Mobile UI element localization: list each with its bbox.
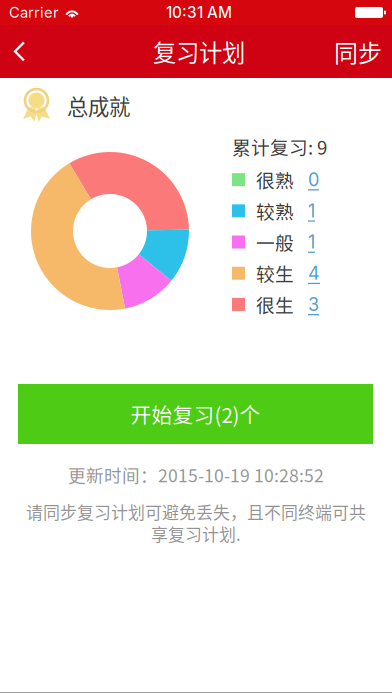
staticText: 享复习计划. <box>151 521 241 546</box>
staticText: 4 <box>308 262 320 284</box>
button[interactable]: 同步 <box>324 25 392 78</box>
staticText: 较熟 <box>256 197 294 224</box>
button[interactable]: Back <box>0 25 39 78</box>
staticText: 很熟 <box>256 166 294 193</box>
staticText: 请同步复习计划可避免丢失，且不同终端可共 <box>26 499 366 524</box>
staticText: 10:31 AM <box>166 3 232 22</box>
staticText: 一般 <box>256 228 294 255</box>
staticText: 开始复习(2)个 <box>130 399 260 429</box>
button[interactable]: 开始复习(2)个 <box>18 384 373 444</box>
staticText: 3 <box>308 293 319 315</box>
staticText: 较生 <box>256 260 294 287</box>
staticText: 同步 <box>334 34 382 69</box>
staticText: 总成就 <box>67 90 130 121</box>
staticText: 复习计划 <box>153 35 245 68</box>
staticText: 0 <box>308 169 319 190</box>
staticText: 1 <box>308 200 315 222</box>
staticText: Carrier <box>9 4 59 21</box>
staticText: 更新时间：2015-10-19 10:28:52 <box>68 462 324 487</box>
staticText: 很生 <box>256 291 294 318</box>
staticText: 1 <box>308 231 315 253</box>
staticText: 累计复习: 9 <box>232 133 327 160</box>
